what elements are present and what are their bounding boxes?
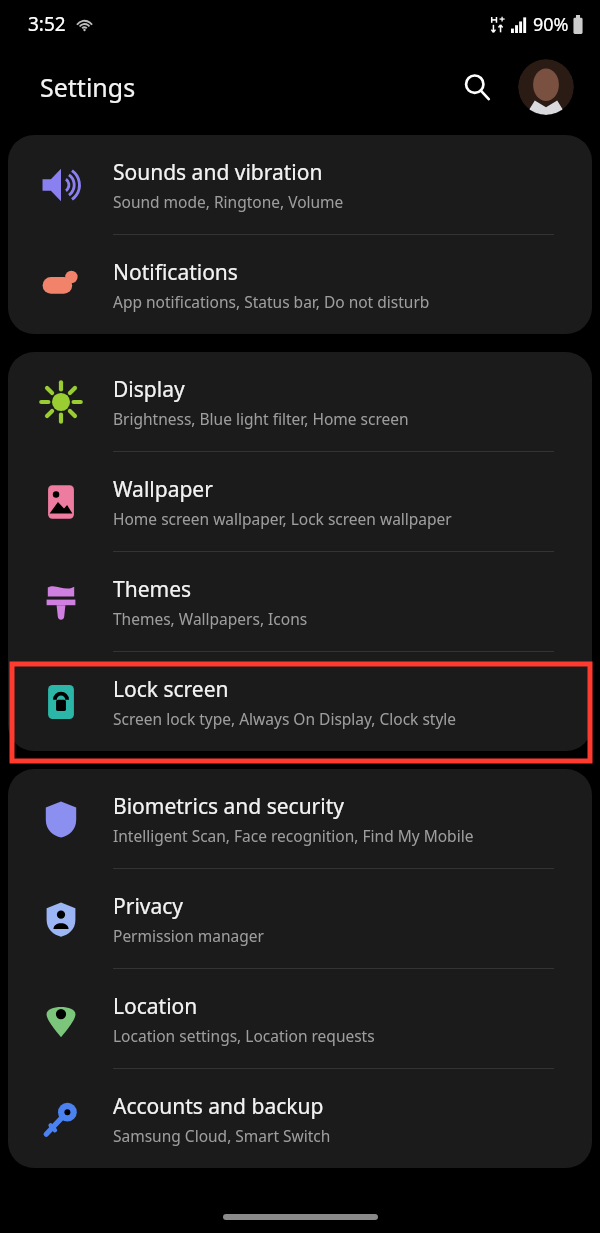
staticText: Biometrics and security — [113, 792, 344, 821]
button[interactable]: Sounds and vibration — [8, 135, 592, 234]
button[interactable]: Wallpaper — [8, 452, 592, 551]
staticText: Permission manager — [113, 925, 264, 946]
staticText: Brightness, Blue light filter, Home scre… — [113, 408, 409, 429]
staticText: Sounds and vibration — [113, 158, 323, 187]
staticText: 90% — [533, 12, 569, 37]
staticText: 3:52 — [28, 11, 66, 37]
staticText: Intelligent Scan, Face recognition, Find… — [113, 825, 474, 846]
staticText: Lock screen — [113, 675, 229, 704]
staticText: Home screen wallpaper, Lock screen wallp… — [113, 508, 452, 529]
staticText: Accounts and backup — [113, 1092, 324, 1121]
button[interactable]: Themes — [8, 552, 592, 651]
button[interactable]: Lock screen — [8, 652, 592, 751]
staticText: Sound mode, Ringtone, Volume — [113, 191, 344, 212]
button[interactable]: Display — [8, 352, 592, 451]
staticText: Themes, Wallpapers, Icons — [113, 608, 308, 629]
button[interactable]: Notifications — [8, 235, 592, 334]
staticText: Settings — [40, 70, 136, 104]
button[interactable]: Privacy — [8, 869, 592, 968]
button[interactable]: Accounts and backup — [8, 1069, 592, 1168]
button[interactable]: Biometrics and security — [8, 769, 592, 868]
button[interactable]: Profile — [518, 59, 574, 115]
staticText: Location settings, Location requests — [113, 1025, 375, 1046]
button[interactable]: Location — [8, 969, 592, 1068]
staticText: Themes — [113, 575, 192, 604]
staticText: Location — [113, 992, 198, 1021]
staticText: Privacy — [113, 892, 184, 921]
staticText: Notifications — [113, 258, 238, 287]
button[interactable]: Search — [454, 64, 500, 110]
staticText: App notifications, Status bar, Do not di… — [113, 291, 430, 312]
staticText: Wallpaper — [113, 475, 213, 504]
staticText: Screen lock type, Always On Display, Clo… — [113, 708, 457, 729]
staticText: Samsung Cloud, Smart Switch — [113, 1125, 331, 1146]
staticText: Display — [113, 375, 185, 404]
